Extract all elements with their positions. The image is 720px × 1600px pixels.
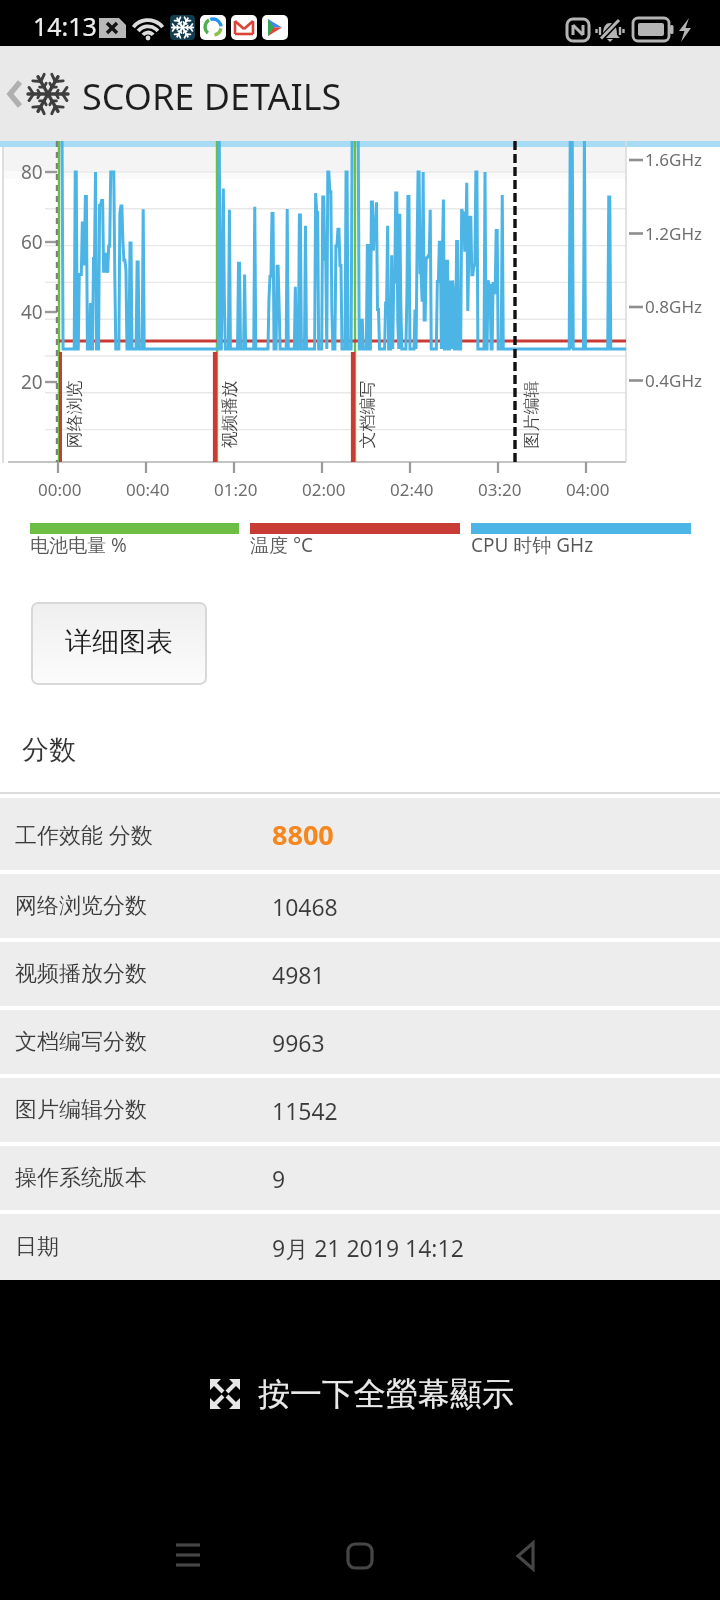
button[interactable]: 日期 xyxy=(0,1214,720,1280)
button[interactable]: Home xyxy=(320,1530,400,1600)
staticText: 40 xyxy=(21,299,43,325)
staticText: 14:13 xyxy=(33,9,97,43)
staticText: 按一下全螢幕顯示 xyxy=(258,1374,514,1414)
staticText: 03:20 xyxy=(478,478,522,501)
button[interactable]: 按一下全螢幕顯示 xyxy=(208,1374,514,1414)
staticText: 11542 xyxy=(272,1095,338,1126)
staticText: 9 xyxy=(272,1163,286,1194)
button[interactable]: Back xyxy=(0,46,78,141)
staticText: 10468 xyxy=(272,891,338,922)
button[interactable]: 详细图表 xyxy=(31,602,207,685)
staticText: 02:40 xyxy=(390,478,434,501)
button[interactable]: 图片编辑分数 xyxy=(0,1078,720,1142)
staticText: 00:40 xyxy=(126,478,170,501)
staticText: SCORE DETAILS xyxy=(82,72,342,121)
staticText: 图片编辑分数 xyxy=(15,1096,147,1124)
staticText: 02:00 xyxy=(302,478,346,501)
staticText: 文档编写分数 xyxy=(15,1028,147,1056)
button[interactable]: Recent apps xyxy=(150,1530,230,1600)
staticText: 4981 xyxy=(272,959,325,990)
staticText: 01:20 xyxy=(214,478,258,501)
staticText: 00:00 xyxy=(38,478,82,501)
staticText: 0.4GHz xyxy=(645,369,702,392)
staticText: 20 xyxy=(21,369,43,395)
staticText: 日期 xyxy=(15,1233,59,1261)
button[interactable]: 网络浏览分数 xyxy=(0,874,720,938)
staticText: 04:00 xyxy=(566,478,610,501)
staticText: 8800 xyxy=(272,816,334,853)
staticText: CPU 时钟 GHz xyxy=(471,532,594,558)
staticText: 分数 xyxy=(22,733,76,767)
staticText: 温度 °C xyxy=(250,532,314,558)
button[interactable]: 工作效能 分数 xyxy=(0,798,720,870)
staticText: 视频播放分数 xyxy=(15,960,147,988)
staticText: 详细图表 xyxy=(65,625,173,659)
staticText: 网络浏览分数 xyxy=(15,892,147,920)
staticText: 60 xyxy=(21,229,43,255)
staticText: 文档编写 xyxy=(356,380,377,448)
staticText: 电池电量 % xyxy=(30,532,127,558)
staticText: 0.8GHz xyxy=(645,295,702,318)
staticText: 9963 xyxy=(272,1027,325,1058)
staticText: 操作系统版本 xyxy=(15,1164,147,1192)
button[interactable]: Back xyxy=(490,1530,570,1600)
button[interactable]: 操作系统版本 xyxy=(0,1146,720,1210)
staticText: 1.6GHz xyxy=(645,148,702,171)
staticText: 9月 21 2019 14:12 xyxy=(272,1232,464,1263)
staticText: 视频播放 xyxy=(218,380,239,448)
button[interactable]: 视频播放分数 xyxy=(0,942,720,1006)
staticText: 80 xyxy=(21,159,43,185)
staticText: 图片编辑 xyxy=(520,380,541,448)
staticText: 工作效能 分数 xyxy=(15,819,153,849)
button[interactable]: 文档编写分数 xyxy=(0,1010,720,1074)
staticText: 1.2GHz xyxy=(645,222,702,245)
staticText: 网络浏览 xyxy=(63,380,84,448)
